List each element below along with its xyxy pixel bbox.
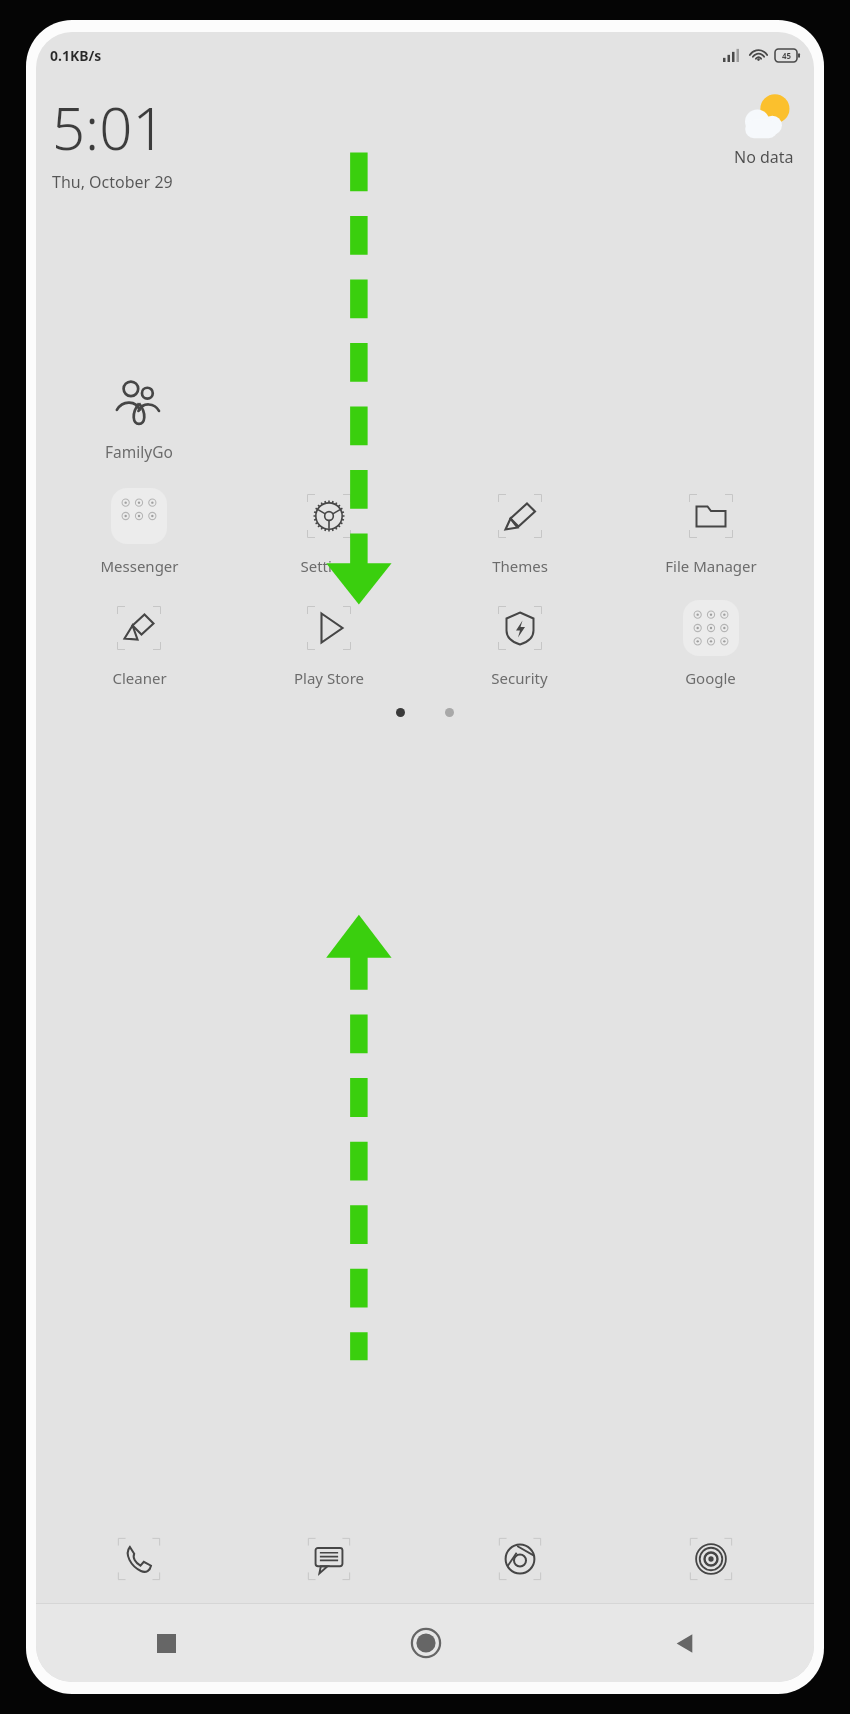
staticText: FamilyGo bbox=[105, 441, 173, 462]
staticText: 0.1KB/s bbox=[50, 46, 102, 65]
button[interactable]: Camera bbox=[615, 1523, 806, 1595]
button[interactable]: Home bbox=[296, 1604, 555, 1682]
button[interactable]: File Manager bbox=[615, 488, 806, 576]
staticText: Settings bbox=[300, 556, 358, 576]
staticText: Play Store bbox=[294, 668, 364, 688]
button[interactable]: Cleaner bbox=[44, 600, 234, 688]
staticText: 45 bbox=[782, 50, 792, 61]
staticText: Themes bbox=[492, 556, 548, 576]
button[interactable]: Phone bbox=[44, 1523, 234, 1595]
button[interactable]: 5:01 bbox=[52, 88, 173, 193]
button[interactable]: FamilyGo bbox=[44, 371, 234, 462]
button[interactable]: Settings bbox=[234, 488, 424, 576]
staticText: No data bbox=[734, 146, 794, 168]
button[interactable]: Chrome bbox=[424, 1523, 615, 1595]
button[interactable]: No data bbox=[734, 88, 794, 168]
button[interactable]: Google bbox=[615, 600, 806, 688]
button[interactable]: Themes bbox=[424, 488, 615, 576]
button[interactable]: Play Store bbox=[234, 600, 424, 688]
staticText: Messenger bbox=[100, 556, 179, 576]
button[interactable]: Recents bbox=[36, 1604, 296, 1682]
button[interactable]: Messenger bbox=[44, 488, 234, 576]
staticText: Google bbox=[685, 668, 736, 688]
staticText: Thu, October 29 bbox=[52, 171, 173, 193]
button[interactable]: Messages bbox=[234, 1523, 424, 1595]
staticText: File Manager bbox=[665, 556, 757, 576]
staticText: 5:01 bbox=[52, 88, 166, 167]
staticText: Security bbox=[491, 668, 548, 688]
staticText: Cleaner bbox=[112, 668, 167, 688]
button[interactable]: Back bbox=[555, 1604, 814, 1682]
button[interactable]: Security bbox=[424, 600, 615, 688]
